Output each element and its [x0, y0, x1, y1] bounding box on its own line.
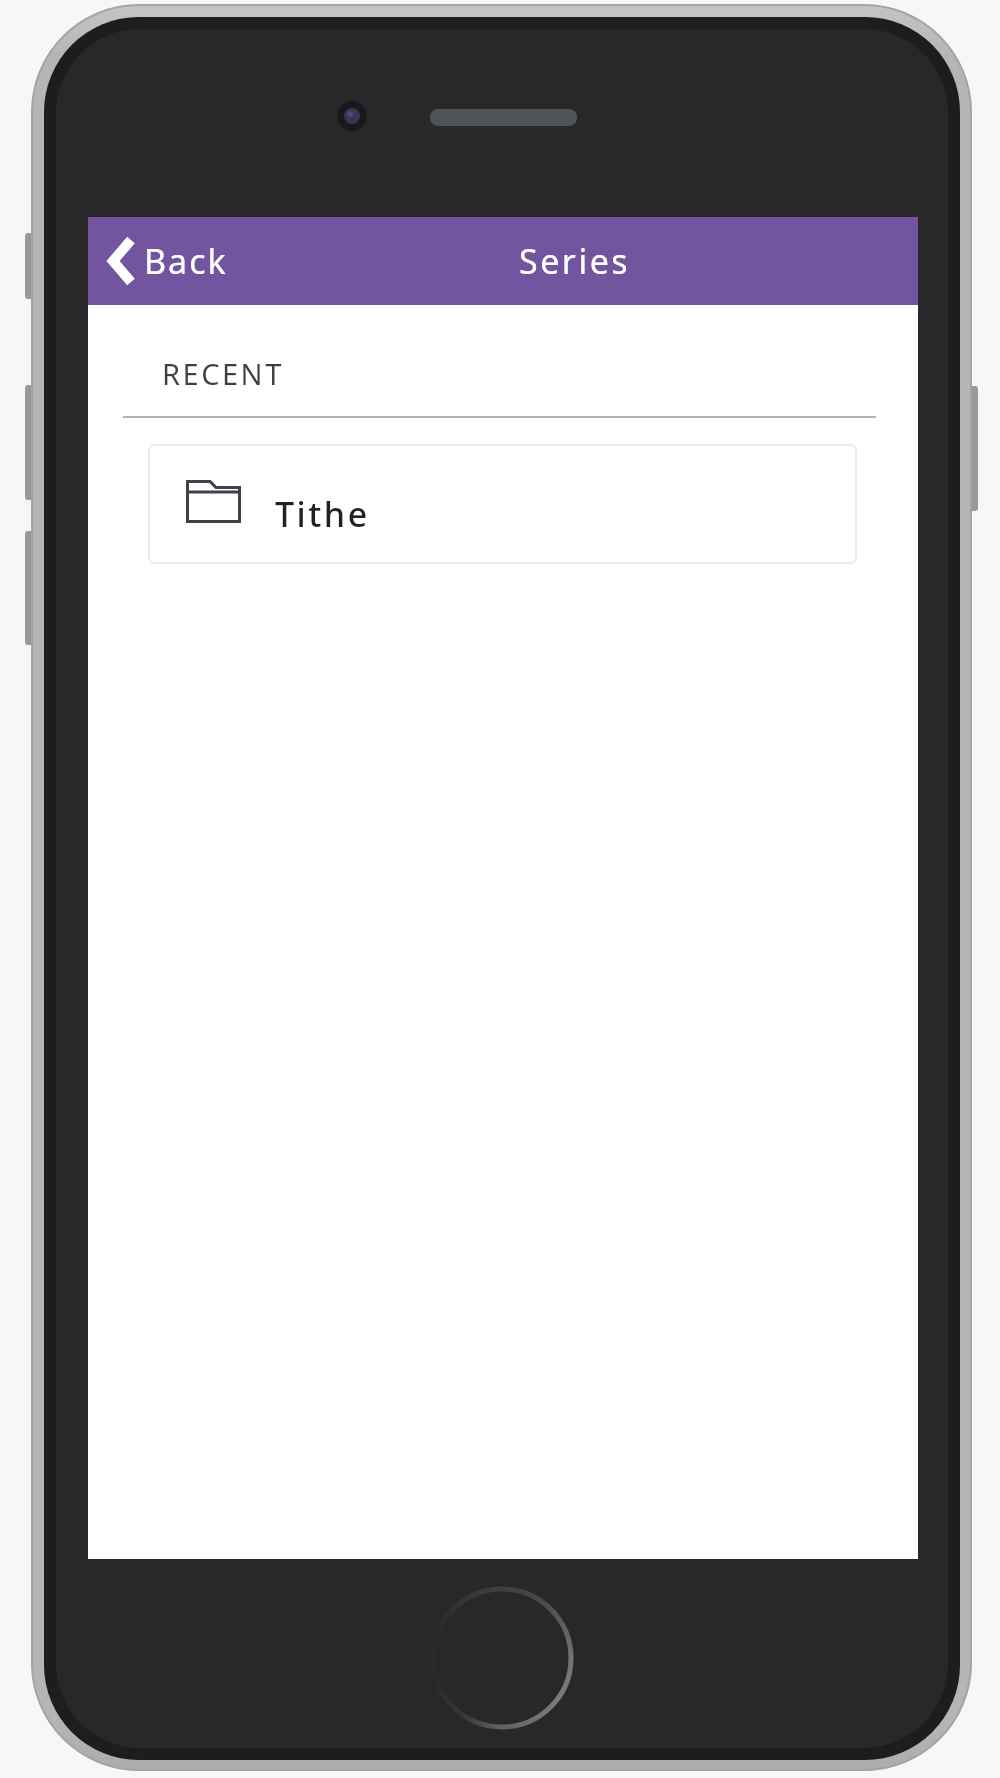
- staticText: RECENT: [162, 354, 284, 393]
- staticText: Series: [519, 238, 631, 284]
- staticText: Back: [144, 238, 228, 284]
- staticText: Tithe: [275, 491, 370, 537]
- button[interactable]: Tithe: [148, 444, 857, 564]
- button[interactable]: Back: [107, 217, 228, 305]
